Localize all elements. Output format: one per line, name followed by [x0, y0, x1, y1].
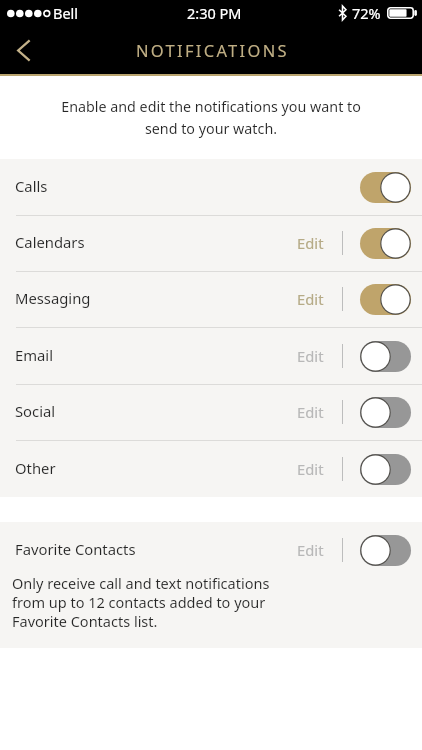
button[interactable]: Messaging — [0, 271, 422, 327]
staticText: Edit — [297, 233, 324, 253]
staticText: Social — [15, 401, 56, 421]
button[interactable]: Toggle on — [360, 228, 411, 259]
button[interactable]: Edit — [294, 281, 327, 317]
staticText: Edit — [297, 459, 324, 479]
button[interactable]: Calls — [0, 159, 422, 215]
staticText: NOTIFICATIONS — [136, 39, 289, 61]
button[interactable]: Edit — [294, 338, 327, 374]
button[interactable]: Toggle off — [360, 341, 411, 372]
button[interactable]: Other — [0, 440, 422, 497]
staticText: Calendars — [15, 232, 85, 252]
staticText: Edit — [297, 289, 324, 309]
button[interactable]: Back — [0, 28, 46, 74]
staticText: Bell — [53, 3, 79, 23]
button[interactable]: Toggle on — [360, 284, 411, 315]
staticText: Edit — [297, 540, 324, 560]
button[interactable]: Email — [0, 327, 422, 384]
staticText: Calls — [15, 176, 48, 196]
staticText: Favorite Contacts — [15, 539, 136, 559]
staticText: Messaging — [15, 288, 91, 308]
staticText: Edit — [297, 346, 324, 366]
staticText: Only receive call and text notifications… — [12, 573, 270, 631]
button[interactable]: Calendars — [0, 215, 422, 271]
button[interactable]: Toggle off — [360, 454, 411, 485]
staticText: Other — [15, 458, 56, 478]
staticText: Enable and edit the notifications you wa… — [24, 97, 398, 138]
button[interactable]: Edit — [294, 394, 327, 430]
staticText: 2:30 PM — [187, 3, 242, 23]
button[interactable]: Edit — [294, 451, 327, 487]
staticText: 72% — [352, 3, 381, 23]
button[interactable]: Edit — [294, 532, 327, 568]
button[interactable]: Toggle on — [360, 172, 411, 203]
button[interactable]: Edit — [294, 225, 327, 261]
button[interactable]: Favorite Contacts — [0, 522, 422, 578]
staticText: Email — [15, 345, 53, 365]
button[interactable]: Toggle off — [360, 397, 411, 428]
staticText: Edit — [297, 402, 324, 422]
button[interactable]: Social — [0, 384, 422, 440]
button[interactable]: Toggle off — [360, 535, 411, 566]
